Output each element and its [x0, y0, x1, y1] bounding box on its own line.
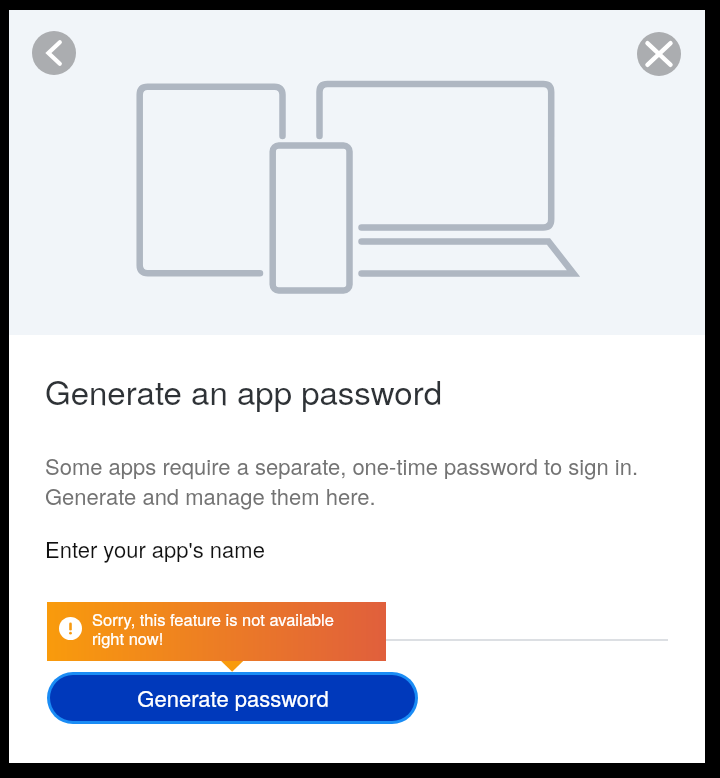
button[interactable]: Close [637, 32, 681, 76]
button[interactable]: Generate password [50, 675, 415, 721]
staticText: Sorry, this feature is not available rig… [92, 607, 334, 649]
button[interactable]: Back [32, 31, 76, 75]
staticText: Enter your app's name [45, 533, 265, 565]
staticText: Generate an app password [45, 367, 443, 414]
staticText: Some apps require a separate, one-time p… [45, 450, 695, 511]
staticText: Generate password [137, 682, 329, 714]
